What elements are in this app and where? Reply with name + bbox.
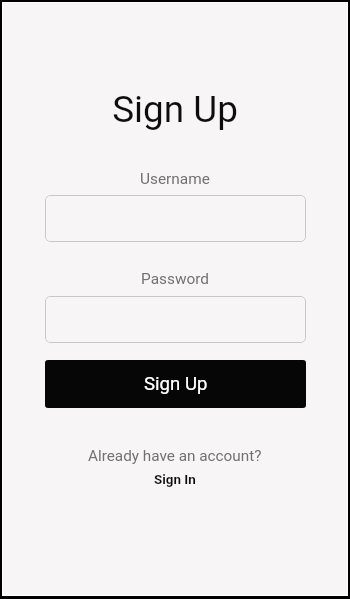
staticText: Sign Up (144, 373, 208, 395)
staticText: Sign In (154, 472, 196, 488)
button[interactable]: Password input field (45, 296, 306, 343)
staticText: Already have an account? (88, 447, 262, 465)
staticText: Username (140, 170, 210, 188)
staticText: Sign Up (112, 88, 238, 131)
button[interactable]: Sign In (154, 472, 196, 488)
staticText: Password (141, 270, 209, 288)
button[interactable]: Sign Up (45, 360, 306, 408)
button[interactable]: Username input field (45, 195, 306, 242)
